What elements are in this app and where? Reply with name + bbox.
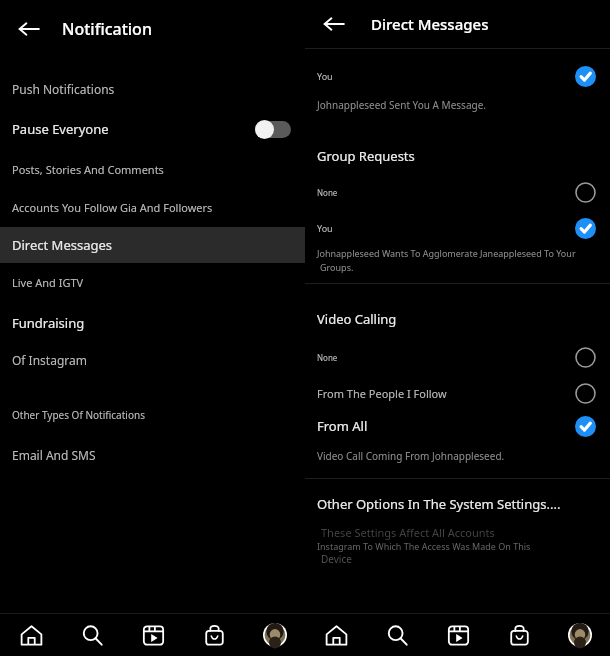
button[interactable]: None	[305, 346, 610, 368]
staticText: Fundraising	[12, 314, 291, 332]
staticText: Video Calling	[317, 310, 596, 328]
button[interactable]: Back	[317, 7, 351, 41]
button[interactable]: Back	[12, 12, 46, 46]
button[interactable]: Home	[11, 615, 51, 655]
staticText: Other Options In The System Settings....	[317, 495, 596, 513]
staticText: Other Types Of Notifications	[12, 408, 291, 422]
staticText: Posts, Stories And Comments	[12, 162, 291, 177]
button[interactable]: You	[305, 65, 610, 87]
button[interactable]: Push Notifications	[0, 75, 305, 102]
button[interactable]: Accounts You Follow Gia And Followers	[0, 194, 305, 221]
button[interactable]: Reels	[438, 615, 478, 655]
staticText: These Settings Affect All Accounts	[321, 525, 495, 540]
button[interactable]: Search	[377, 615, 417, 655]
button[interactable]: Video Call Coming From Johnappleseed.	[305, 446, 610, 466]
staticText: You	[317, 222, 575, 234]
button[interactable]: Shop	[194, 615, 234, 655]
button[interactable]: You	[305, 217, 610, 239]
button[interactable]: From All	[305, 414, 610, 438]
staticText: Live And IGTV	[12, 275, 291, 290]
staticText: Instagram To Which The Access Was Made O…	[317, 540, 531, 552]
button[interactable]: Pause Everyone	[0, 114, 305, 144]
button[interactable]: Group Requests	[305, 143, 610, 169]
button[interactable]: Johnappleseed Sent You A Message.	[305, 95, 610, 115]
staticText: Accounts You Follow Gia And Followers	[12, 200, 291, 215]
staticText: Direct Messages	[371, 14, 489, 34]
staticText: Group Requests	[317, 147, 596, 165]
staticText: Push Notifications	[12, 81, 291, 97]
button[interactable]: Profile	[255, 615, 295, 655]
button[interactable]: Other Types Of Notifications	[0, 403, 305, 427]
staticText: From All	[317, 417, 575, 435]
staticText: Notification	[62, 18, 152, 40]
staticText: Pause Everyone	[12, 120, 255, 138]
staticText: Video Call Coming From Johnappleseed.	[317, 449, 596, 463]
button[interactable]: Home	[316, 615, 356, 655]
staticText: Device	[321, 552, 352, 566]
staticText: None	[317, 352, 575, 363]
staticText: From The People I Follow	[317, 386, 575, 401]
button[interactable]: Shop	[499, 615, 539, 655]
button[interactable]: Direct Messages	[0, 227, 305, 263]
button[interactable]: Profile	[560, 615, 600, 655]
staticText: You	[317, 70, 575, 82]
staticText: Email And SMS	[12, 447, 291, 463]
staticText: Johnappleseed Sent You A Message.	[317, 98, 596, 112]
button[interactable]: Reels	[133, 615, 173, 655]
staticText: Johnappleseed Wants To Agglomerate Janea…	[317, 247, 576, 259]
button[interactable]: Other Options In The System Settings....	[305, 491, 610, 517]
button[interactable]: Search	[72, 615, 112, 655]
button[interactable]: None	[305, 181, 610, 203]
staticText: Groups.	[320, 261, 354, 273]
staticText: Direct Messages	[12, 236, 291, 254]
button[interactable]: Video Calling	[305, 306, 610, 332]
staticText: None	[317, 187, 575, 198]
staticText: Of Instagram	[12, 352, 291, 368]
button[interactable]: Fundraising	[0, 308, 305, 338]
button[interactable]: Email And SMS	[0, 441, 305, 468]
button[interactable]: Posts, Stories And Comments	[0, 156, 305, 183]
button[interactable]: Of Instagram	[0, 346, 305, 373]
button[interactable]: From The People I Follow	[305, 382, 610, 404]
button[interactable]: Live And IGTV	[0, 269, 305, 296]
